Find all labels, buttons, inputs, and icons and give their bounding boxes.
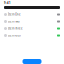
staticText: Item Four bbox=[8, 34, 21, 37]
staticText: Item One bbox=[8, 13, 21, 16]
staticText: Item Two bbox=[8, 20, 20, 23]
staticText: Item Three bbox=[8, 27, 23, 30]
button[interactable] bbox=[22, 59, 41, 64]
staticText: 9:41 bbox=[4, 1, 11, 5]
